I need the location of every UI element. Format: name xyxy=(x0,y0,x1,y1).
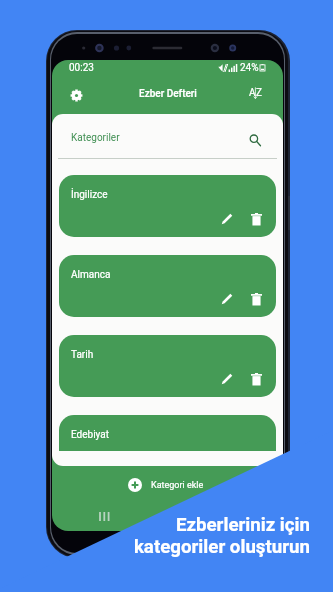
staticText: 24% xyxy=(240,62,259,74)
button[interactable]: Delete xyxy=(248,211,264,227)
button[interactable]: Edit xyxy=(219,291,235,307)
staticText: İngilizce xyxy=(71,189,108,201)
staticText: Tarih xyxy=(71,349,94,361)
staticText: Edebiyat xyxy=(71,429,109,441)
button[interactable]: Delete xyxy=(248,371,264,387)
button[interactable]: Tarih xyxy=(59,335,276,397)
staticText: Kategori ekle xyxy=(151,480,204,491)
staticText: Ezber Defteri xyxy=(139,88,197,100)
staticText: kategoriler oluşturun xyxy=(133,536,310,558)
staticText: Ezberleriniz için xyxy=(175,514,310,536)
button[interactable]: Delete xyxy=(248,291,264,307)
button[interactable]: Almanca xyxy=(59,255,276,317)
button[interactable]: Edebiyat xyxy=(59,415,276,451)
staticText: Kategoriler xyxy=(71,132,120,144)
staticText: Z xyxy=(256,87,262,99)
button[interactable]: Kategori ekle xyxy=(128,478,204,492)
button[interactable]: Sort A to Z xyxy=(242,82,268,108)
staticText: A xyxy=(249,87,256,99)
button[interactable]: Settings xyxy=(63,82,89,108)
staticText: 00:23 xyxy=(69,62,94,74)
button[interactable]: Search xyxy=(244,128,266,150)
staticText: Almanca xyxy=(71,269,111,281)
button[interactable]: İngilizce xyxy=(59,175,276,237)
button[interactable]: Edit xyxy=(219,211,235,227)
button[interactable]: Kategoriler xyxy=(52,114,283,158)
button[interactable]: Edit xyxy=(219,371,235,387)
